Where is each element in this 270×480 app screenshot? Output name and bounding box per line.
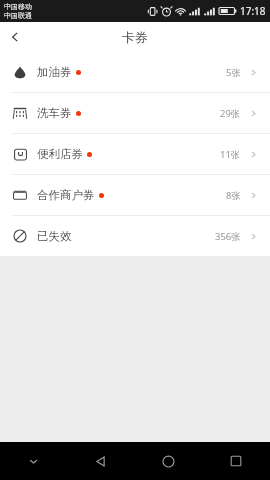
button[interactable]: Home xyxy=(134,442,202,480)
staticText: 8张 xyxy=(226,189,241,202)
staticText: 17:18 xyxy=(240,4,266,18)
button[interactable]: Back xyxy=(0,22,30,52)
staticText: 洗车券 xyxy=(37,106,72,120)
button[interactable]: 洗车券 xyxy=(0,93,270,133)
button[interactable]: 已失效 xyxy=(0,216,270,256)
staticText: 合作商户券 xyxy=(37,188,95,202)
staticText: 356张 xyxy=(215,230,241,243)
button[interactable]: 合作商户券 xyxy=(0,175,270,215)
staticText: 已失效 xyxy=(37,229,72,243)
staticText: 29张 xyxy=(220,107,241,120)
staticText: 5张 xyxy=(226,66,241,79)
staticText: 卡券 xyxy=(122,29,148,45)
button[interactable]: Back xyxy=(67,442,134,480)
button[interactable]: Hide navigation bar xyxy=(0,442,67,480)
staticText: 11张 xyxy=(220,148,241,161)
staticText: 中国联通 xyxy=(4,11,32,20)
staticText: 便利店券 xyxy=(37,147,83,161)
button[interactable]: Recent apps xyxy=(202,442,270,480)
button[interactable]: 加油券 xyxy=(0,52,270,92)
button[interactable]: 便利店券 xyxy=(0,134,270,174)
staticText: 中国移动 xyxy=(4,2,32,11)
staticText: 加油券 xyxy=(37,65,72,79)
